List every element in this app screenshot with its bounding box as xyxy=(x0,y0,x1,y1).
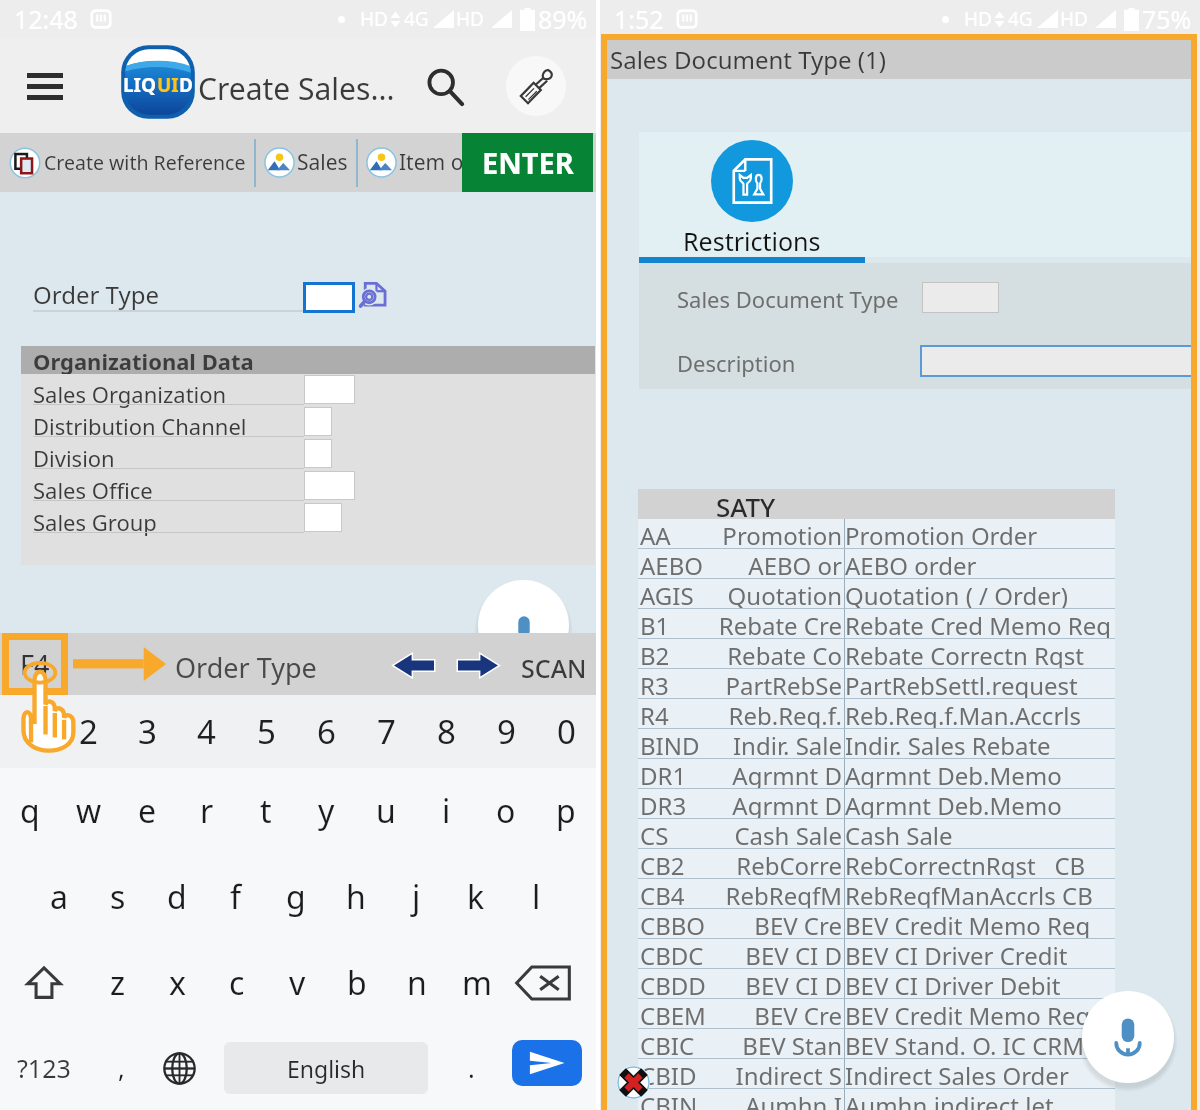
button[interactable]: R3 xyxy=(638,669,1115,699)
button[interactable]: CB2 xyxy=(638,849,1115,879)
button[interactable]: Voice input xyxy=(478,580,569,671)
button[interactable]: 9 xyxy=(476,695,536,768)
staticText: Indir. Sale xyxy=(732,729,842,759)
staticText: BEV Cre xyxy=(754,909,842,939)
button[interactable]: e xyxy=(118,768,177,854)
button[interactable]: Change language xyxy=(158,1044,200,1092)
button[interactable]: n xyxy=(387,940,447,1026)
button[interactable]: 0 xyxy=(536,695,596,768)
button[interactable]: AA xyxy=(638,519,1115,549)
button[interactable]: Division xyxy=(21,438,595,470)
button[interactable]: Value help xyxy=(356,278,389,311)
button[interactable]: Cancel xyxy=(617,1066,650,1099)
button[interactable]: Sales Office xyxy=(21,470,595,502)
button[interactable]: 8 xyxy=(416,695,476,768)
button[interactable]: R4 xyxy=(638,699,1115,729)
button[interactable]: d xyxy=(147,854,206,940)
button[interactable]: Shift xyxy=(0,940,88,1026)
button[interactable]: a xyxy=(29,854,88,940)
button[interactable]: Sales Group xyxy=(21,502,595,534)
button[interactable]: DR1 xyxy=(638,759,1115,789)
staticText: CB4 xyxy=(640,879,685,909)
button[interactable]: CBBO xyxy=(638,909,1115,939)
button[interactable]: Search xyxy=(418,60,472,114)
button[interactable]: B2 xyxy=(638,639,1115,669)
button[interactable]: z xyxy=(88,940,147,1026)
staticText: English xyxy=(287,1053,366,1084)
button[interactable]: l xyxy=(506,854,566,940)
button[interactable]: t xyxy=(236,768,296,854)
button[interactable]: 1 xyxy=(0,695,59,768)
button[interactable]: k xyxy=(446,854,506,940)
button[interactable]: Create with Reference xyxy=(0,133,246,192)
button[interactable]: y xyxy=(296,768,356,854)
button[interactable]: CBDD xyxy=(638,969,1115,999)
button[interactable]: i xyxy=(416,768,476,854)
staticText: l xyxy=(532,875,541,919)
staticText: x xyxy=(169,961,186,1005)
button[interactable]: x xyxy=(147,940,207,1026)
button[interactable]: 3 xyxy=(118,695,177,768)
staticText: Division xyxy=(33,443,115,473)
button[interactable]: SCAN xyxy=(521,651,587,685)
button[interactable]: 6 xyxy=(296,695,356,768)
button[interactable]: j xyxy=(386,854,446,940)
button[interactable]: ENTER xyxy=(462,133,593,192)
button[interactable]: English xyxy=(224,1042,428,1094)
staticText: b xyxy=(347,961,367,1005)
button[interactable]: CBIN xyxy=(638,1089,1115,1110)
button[interactable]: g xyxy=(266,854,326,940)
button[interactable]: , xyxy=(100,1044,142,1092)
button[interactable]: ?123 xyxy=(10,1044,78,1092)
button[interactable]: AGIS xyxy=(638,579,1115,609)
button[interactable]: . xyxy=(450,1044,492,1092)
button[interactable]: B1 xyxy=(638,609,1115,639)
button[interactable] xyxy=(303,282,355,313)
button[interactable]: Send xyxy=(512,1040,582,1086)
staticText: Sales xyxy=(297,148,348,177)
button[interactable]: m xyxy=(447,940,507,1026)
button[interactable]: q xyxy=(0,768,59,854)
button[interactable]: CBIC xyxy=(638,1029,1115,1059)
button[interactable]: c xyxy=(207,940,267,1026)
button[interactable]: F4 xyxy=(2,633,68,695)
button[interactable]: 2 xyxy=(59,695,118,768)
button[interactable]: Item ov xyxy=(358,133,474,192)
button[interactable]: r xyxy=(177,768,236,854)
button[interactable]: CBID xyxy=(638,1059,1115,1089)
button[interactable]: CBDC xyxy=(638,939,1115,969)
button[interactable] xyxy=(920,345,1191,377)
button[interactable]: Backspace xyxy=(507,940,596,1026)
button[interactable]: 4 xyxy=(177,695,236,768)
button[interactable]: DR3 xyxy=(638,789,1115,819)
button[interactable]: Sales xyxy=(256,133,348,192)
button[interactable]: Previous field xyxy=(394,653,434,678)
button[interactable]: s xyxy=(88,854,147,940)
button[interactable]: CBEM xyxy=(638,999,1115,1029)
staticText: ?123 xyxy=(17,1051,71,1085)
button[interactable]: p xyxy=(536,768,596,854)
button[interactable]: o xyxy=(476,768,536,854)
button[interactable]: CS xyxy=(638,819,1115,849)
button[interactable]: Restrictions tab xyxy=(639,132,865,263)
button[interactable]: b xyxy=(327,940,387,1026)
button[interactable]: 7 xyxy=(356,695,416,768)
button[interactable]: u xyxy=(356,768,416,854)
button[interactable]: h xyxy=(326,854,386,940)
button[interactable]: Menu xyxy=(16,62,74,110)
button[interactable]: f xyxy=(206,854,266,940)
button[interactable]: Tools xyxy=(506,56,566,116)
button[interactable]: v xyxy=(267,940,327,1026)
button[interactable]: Distribution Channel xyxy=(21,406,595,438)
button[interactable]: BIND xyxy=(638,729,1115,759)
staticText: Aumhn.I xyxy=(745,1089,842,1110)
button[interactable]: AEBO xyxy=(638,549,1115,579)
button[interactable]: Next field xyxy=(458,653,498,678)
button[interactable]: w xyxy=(59,768,118,854)
button[interactable]: Voice input xyxy=(1082,991,1174,1083)
staticText: t xyxy=(260,789,272,833)
button[interactable] xyxy=(922,282,999,313)
button[interactable]: CB4 xyxy=(638,879,1115,909)
button[interactable]: 5 xyxy=(236,695,296,768)
button[interactable]: Sales Organization xyxy=(21,374,595,406)
